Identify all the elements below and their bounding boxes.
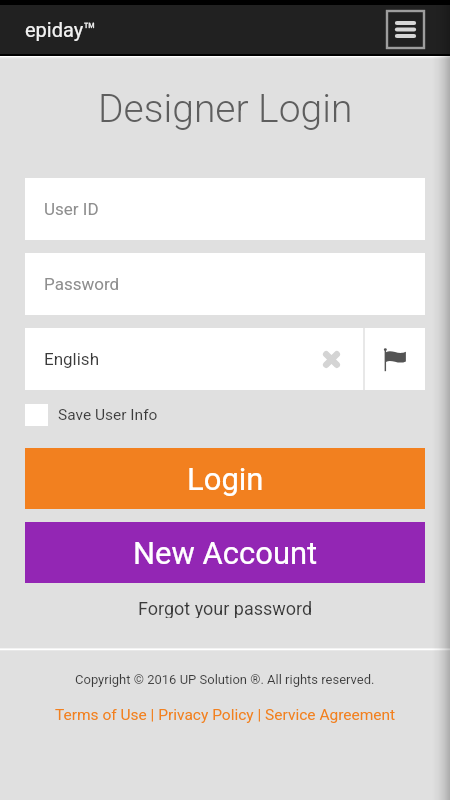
- button[interactable]: Select country: [365, 328, 425, 390]
- staticText: Designer Login: [98, 86, 353, 132]
- staticText: English: [44, 349, 316, 369]
- button[interactable]: New Account: [25, 522, 425, 583]
- staticText: Login: [187, 461, 264, 497]
- button[interactable]: User ID: [25, 178, 425, 240]
- button[interactable]: Save User Info: [25, 400, 158, 430]
- button[interactable]: Password: [25, 253, 425, 315]
- button[interactable]: Login: [25, 448, 425, 509]
- button[interactable]: Open navigation menu: [386, 10, 425, 49]
- button[interactable]: English: [25, 328, 363, 390]
- button[interactable]: Forgot your password: [130, 594, 321, 622]
- staticText: epiday™: [25, 18, 96, 41]
- staticText: New Account: [133, 535, 318, 571]
- staticText: Save User Info: [58, 406, 158, 424]
- staticText: Password: [44, 274, 120, 294]
- button[interactable]: Terms of Use | Privacy Policy | Service …: [49, 703, 402, 727]
- staticText: User ID: [44, 199, 99, 219]
- staticText: Copyright © 2016 UP Solution ®. All righ…: [75, 672, 375, 687]
- button[interactable]: Clear language: [316, 344, 346, 374]
